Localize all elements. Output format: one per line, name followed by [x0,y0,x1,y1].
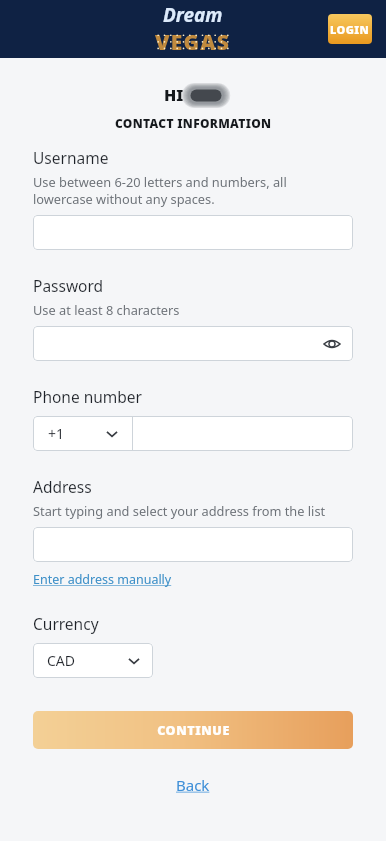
staticText: +1 [48,424,65,443]
staticText: lowercase without any spaces. [33,190,215,207]
staticText: Back [176,775,210,795]
staticText: Use between 6-20 letters and numbers, al… [33,173,287,190]
staticText: Start typing and select your address fro… [33,502,326,519]
button[interactable]: LOGIN [328,14,372,44]
button[interactable]: Enter address manually [33,571,172,588]
staticText: CAD [47,651,76,670]
staticText: Phone number [33,386,143,407]
staticText: Currency [33,613,99,634]
button[interactable]: +1 [33,416,132,451]
staticText: Dream [163,2,223,28]
button[interactable]: Show password [321,333,343,355]
button[interactable]: CAD [33,643,153,678]
button[interactable]: CONTINUE [33,711,353,749]
button[interactable] [133,416,353,451]
button[interactable] [33,215,353,250]
button[interactable]: Back [176,775,210,795]
staticText: VEGAS [155,28,231,57]
staticText: Enter address manually [33,571,172,588]
staticText: Address [33,476,92,497]
staticText: HI [164,84,184,106]
staticText: CONTINUE [157,722,230,739]
button[interactable]: Dream Vegas home [155,2,231,57]
staticText: Username [33,147,109,168]
button[interactable]: Show password [33,326,353,361]
staticText: CONTACT INFORMATION [115,115,272,131]
staticText: Use at least 8 characters [33,301,180,318]
button[interactable] [33,527,353,562]
staticText: LOGIN [330,22,370,37]
staticText: Password [33,275,104,296]
